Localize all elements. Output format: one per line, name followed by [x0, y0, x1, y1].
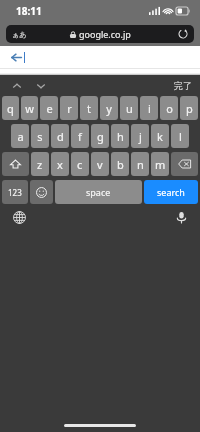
- staticText: google.co.jp: [79, 28, 131, 40]
- button[interactable]: w: [21, 96, 38, 120]
- button[interactable]: e: [40, 96, 58, 120]
- button[interactable]: t: [80, 96, 98, 120]
- staticText: c: [77, 157, 83, 172]
- button[interactable]: x: [51, 152, 69, 176]
- button[interactable]: Reload: [177, 28, 189, 40]
- button[interactable]: q: [2, 96, 19, 120]
- staticText: search: [157, 186, 185, 198]
- button[interactable]: p: [180, 96, 198, 120]
- button[interactable]: Backspace: [171, 152, 198, 176]
- staticText: k: [157, 129, 163, 144]
- staticText: v: [97, 157, 103, 172]
- button[interactable]: Previous field: [10, 79, 24, 93]
- staticText: g: [97, 129, 104, 144]
- button[interactable]: [24, 46, 200, 68]
- button[interactable]: ぁあ: [6, 25, 194, 43]
- button[interactable]: space: [55, 180, 142, 204]
- button[interactable]: s: [31, 124, 49, 148]
- button[interactable]: f: [71, 124, 89, 148]
- staticText: f: [78, 129, 82, 144]
- staticText: 完了: [174, 80, 192, 91]
- staticText: 123: [8, 187, 22, 198]
- button[interactable]: r: [60, 96, 78, 120]
- button[interactable]: search: [144, 180, 198, 204]
- button[interactable]: a: [11, 124, 29, 148]
- button[interactable]: v: [91, 152, 109, 176]
- staticText: space: [86, 186, 111, 198]
- button[interactable]: z: [31, 152, 49, 176]
- staticText: u: [126, 101, 133, 116]
- button[interactable]: Voice input: [172, 208, 190, 226]
- staticText: ぁあ: [12, 30, 27, 39]
- staticText: l: [179, 129, 182, 144]
- button[interactable]: y: [100, 96, 118, 120]
- button[interactable]: m: [151, 152, 169, 176]
- button[interactable]: c: [71, 152, 89, 176]
- button[interactable]: 完了: [174, 80, 192, 91]
- button[interactable]: n: [131, 152, 149, 176]
- staticText: o: [166, 101, 173, 116]
- staticText: d: [57, 129, 64, 144]
- button[interactable]: l: [171, 124, 189, 148]
- button[interactable]: Back: [8, 49, 24, 65]
- staticText: p: [186, 101, 193, 116]
- staticText: y: [106, 101, 112, 116]
- button[interactable]: b: [111, 152, 129, 176]
- staticText: m: [155, 157, 166, 172]
- button[interactable]: Shift: [2, 152, 29, 176]
- button[interactable]: d: [51, 124, 69, 148]
- button[interactable]: g: [91, 124, 109, 148]
- staticText: t: [87, 101, 91, 116]
- button[interactable]: Emoji: [30, 180, 53, 204]
- staticText: a: [17, 129, 24, 144]
- staticText: z: [37, 157, 43, 172]
- staticText: b: [117, 157, 124, 172]
- button[interactable]: k: [151, 124, 169, 148]
- staticText: i: [148, 101, 151, 116]
- button[interactable]: u: [120, 96, 138, 120]
- staticText: x: [57, 157, 63, 172]
- button[interactable]: i: [140, 96, 158, 120]
- staticText: s: [37, 129, 43, 144]
- staticText: j: [139, 129, 142, 144]
- staticText: w: [25, 101, 34, 116]
- staticText: r: [67, 101, 72, 116]
- staticText: h: [117, 129, 124, 144]
- button[interactable]: o: [160, 96, 178, 120]
- staticText: n: [137, 157, 144, 172]
- button[interactable]: Change keyboard: [10, 208, 28, 226]
- button[interactable]: j: [131, 124, 149, 148]
- staticText: e: [46, 101, 53, 116]
- button[interactable]: h: [111, 124, 129, 148]
- button[interactable]: Next field: [34, 79, 48, 93]
- staticText: 18:11: [16, 4, 42, 18]
- staticText: q: [7, 101, 14, 116]
- button[interactable]: 123: [2, 180, 28, 204]
